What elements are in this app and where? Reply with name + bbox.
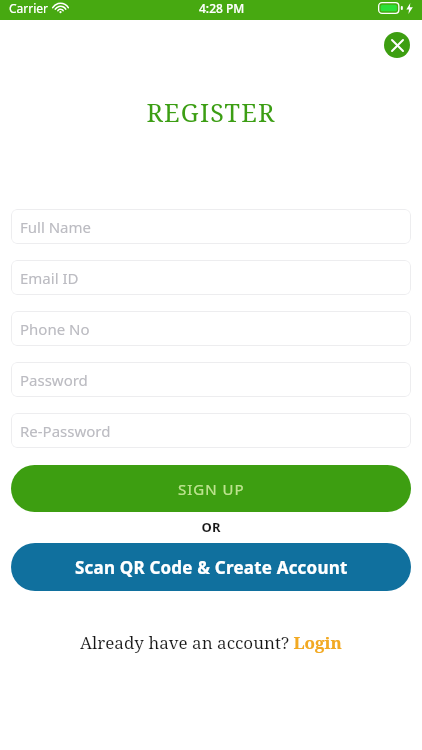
button[interactable]: Scan QR Code & Create Account	[11, 543, 411, 591]
button[interactable]: Close	[384, 32, 410, 58]
staticText: 4:28 PM	[199, 0, 245, 16]
staticText: Full Name	[20, 217, 91, 237]
staticText: SIGN UP	[178, 479, 245, 499]
button[interactable]: Phone No	[11, 311, 411, 346]
staticText: Re-Password	[20, 421, 111, 441]
staticText: REGISTER	[0, 95, 422, 129]
button[interactable]: Already have an account? Login	[0, 631, 422, 654]
staticText: Scan QR Code & Create Account	[75, 556, 348, 579]
staticText: Phone No	[20, 319, 90, 339]
button[interactable]: Full Name	[11, 209, 411, 244]
button[interactable]: SIGN UP	[11, 465, 411, 512]
staticText: OR	[0, 518, 422, 536]
staticText: Already have an account? Login	[80, 631, 342, 654]
staticText: Carrier	[9, 0, 49, 16]
staticText: Email ID	[20, 268, 79, 288]
staticText: Password	[20, 370, 88, 390]
button[interactable]: Email ID	[11, 260, 411, 295]
button[interactable]: Password	[11, 362, 411, 397]
button[interactable]: Re-Password	[11, 413, 411, 448]
